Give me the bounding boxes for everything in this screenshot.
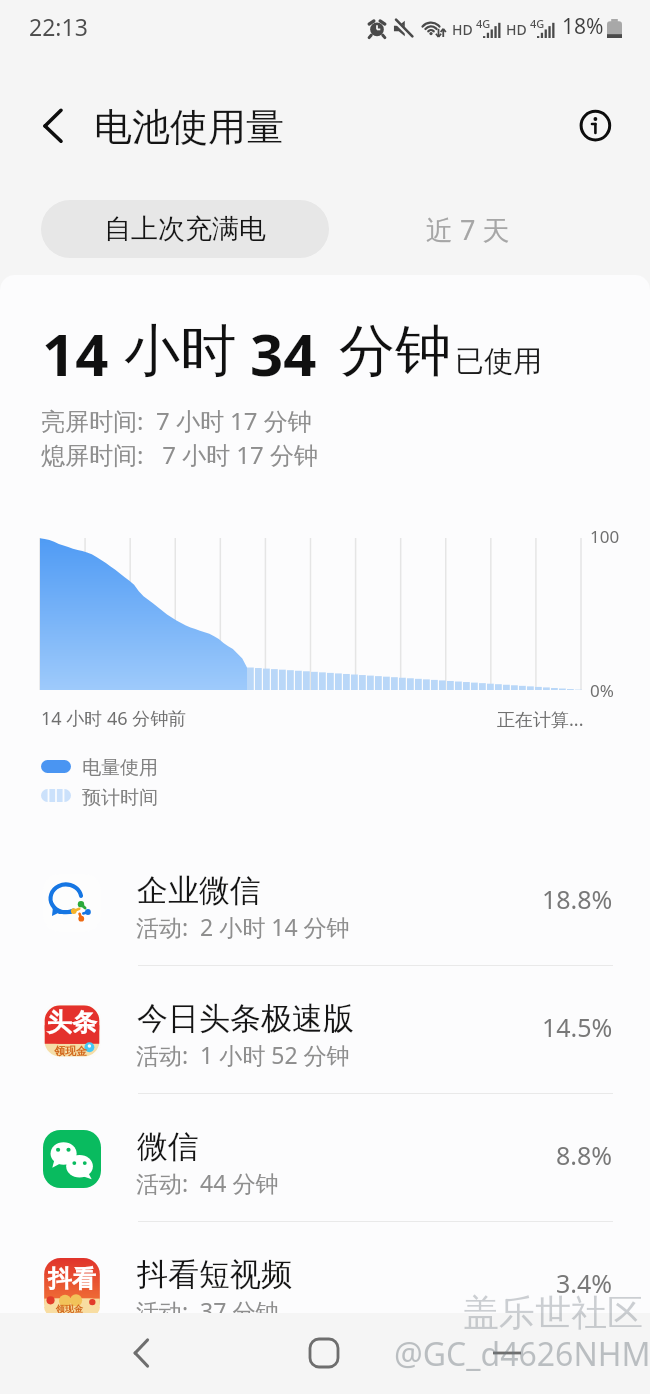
staticText: 小时 <box>124 316 236 387</box>
button[interactable]: 自上次充满电 <box>41 200 329 258</box>
staticText: 活动: 2 小时 14 分钟 <box>136 911 350 942</box>
button[interactable]: 头条 <box>0 938 650 1066</box>
staticText: 领现金 <box>56 1303 83 1313</box>
staticText: 电池使用量 <box>94 103 284 151</box>
staticText: 活动: 44 分钟 <box>136 1167 279 1198</box>
staticText: 18.8% <box>542 882 613 916</box>
staticText: 预计时间 <box>82 786 158 810</box>
button[interactable]: Recent apps <box>472 1318 542 1388</box>
staticText: 活动: 1 小时 52 分钟 <box>136 1039 350 1070</box>
staticText: 亮屏时间: 7 小时 17 分钟 <box>41 404 312 437</box>
staticText: 微信 <box>137 1127 199 1166</box>
staticText: 分钟 <box>339 316 451 387</box>
staticText: 8.8% <box>556 1138 613 1172</box>
staticText: 4G <box>476 16 491 31</box>
button[interactable]: Information <box>571 101 620 150</box>
staticText: 18% <box>562 12 604 41</box>
staticText: 34 <box>250 314 317 393</box>
staticText: 抖看短视频 <box>137 1255 292 1294</box>
button[interactable]: 近 7 天 <box>380 200 555 258</box>
staticText: 头条 <box>47 1007 97 1038</box>
staticText: 今日头条极速版 <box>137 999 354 1038</box>
staticText: 22:13 <box>29 11 88 42</box>
staticText: 熄屏时间: 7 小时 17 分钟 <box>41 438 319 471</box>
staticText: HD <box>452 20 473 39</box>
staticText: 14 小时 46 分钟前 <box>41 706 187 731</box>
staticText: 抖看 <box>48 1264 96 1294</box>
staticText: 14 <box>42 314 109 393</box>
staticText: 自上次充满电 <box>104 212 266 246</box>
staticText: 已使用 <box>455 343 542 380</box>
staticText: 电量使用 <box>82 756 158 780</box>
staticText: 14.5% <box>542 1010 613 1044</box>
button[interactable]: Back <box>106 1318 176 1388</box>
staticText: 3.4% <box>556 1266 613 1300</box>
staticText: HD <box>506 20 527 39</box>
staticText: 4G <box>530 16 545 31</box>
button[interactable]: Home <box>289 1318 359 1388</box>
staticText: 领现金 <box>54 1044 87 1058</box>
staticText: 盖乐世社区 <box>463 1290 643 1335</box>
button[interactable]: 抖看 <box>0 1194 650 1313</box>
staticText: 活动: 37 分钟 <box>136 1295 279 1313</box>
button[interactable]: 企业微信 <box>0 810 650 938</box>
staticText: 0% <box>590 679 614 702</box>
staticText: 正在计算... <box>497 707 584 732</box>
staticText: 企业微信 <box>137 871 261 910</box>
button[interactable]: 微信 <box>0 1066 650 1194</box>
button[interactable]: Back <box>28 101 80 153</box>
staticText: 近 7 天 <box>426 211 510 248</box>
staticText: 100 <box>590 525 620 548</box>
staticText: @GC_d4626NHM <box>394 1332 650 1376</box>
